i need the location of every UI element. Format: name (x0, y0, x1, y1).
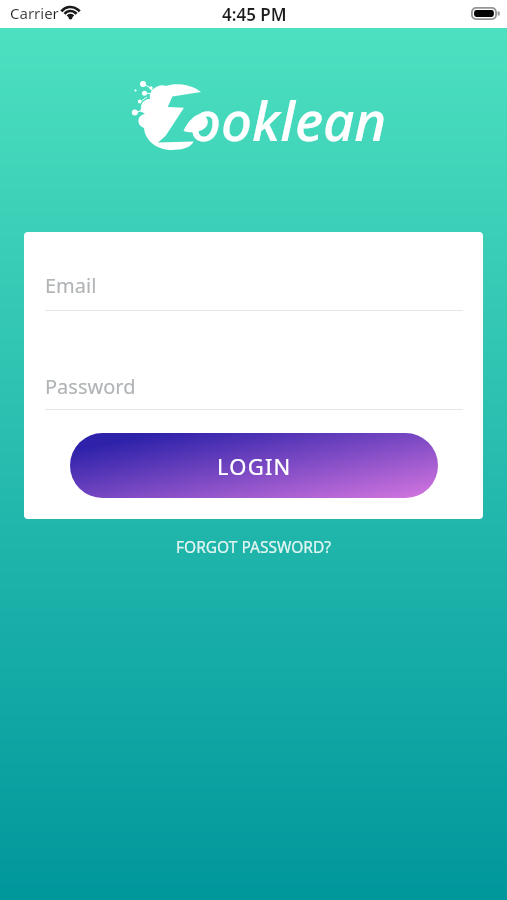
staticText: Email (45, 272, 97, 299)
button[interactable]: FORGOT PASSWORD? (166, 531, 341, 562)
other: Wi-Fi signal (59, 5, 82, 19)
staticText: Password (45, 373, 136, 400)
staticText: ooklean (190, 83, 387, 157)
staticText: LOGIN (217, 451, 292, 481)
staticText: Carrier (10, 3, 59, 23)
button[interactable]: LOGIN (70, 433, 438, 498)
staticText: FORGOT PASSWORD? (176, 536, 331, 557)
staticText: 4:45 PM (222, 3, 287, 26)
